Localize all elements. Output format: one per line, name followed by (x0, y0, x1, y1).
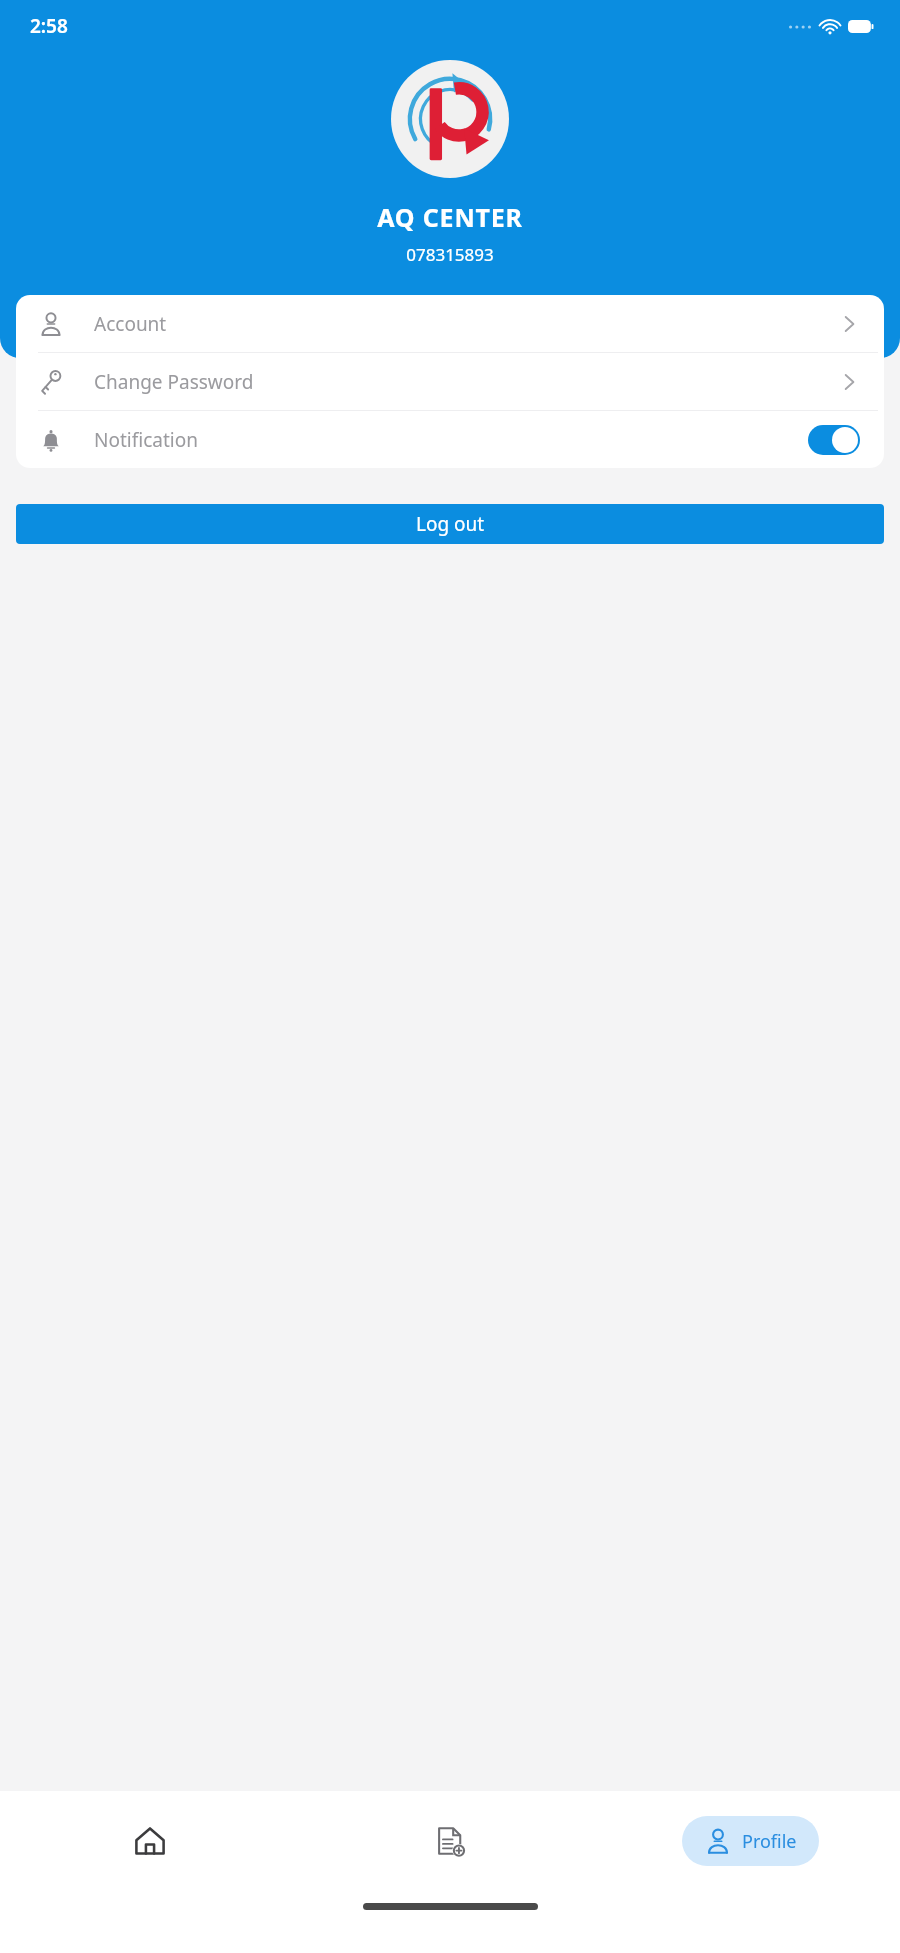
staticText: Notification (94, 427, 198, 453)
button[interactable]: Profile (682, 1816, 819, 1866)
button[interactable]: Notification (16, 411, 884, 468)
staticText: Account (94, 311, 167, 337)
button[interactable]: Change Password (16, 353, 884, 410)
staticText: Profile (742, 1829, 797, 1854)
staticText: 2:58 (30, 13, 68, 39)
staticText: 078315893 (0, 243, 900, 266)
button[interactable]: Account (16, 295, 884, 352)
staticText: Log out (416, 511, 485, 537)
button[interactable]: Notification toggle (808, 425, 860, 455)
button[interactable]: Log out (16, 504, 884, 544)
button[interactable]: Orders (425, 1816, 475, 1866)
staticText: Change Password (94, 369, 254, 395)
staticText: AQ CENTER (0, 200, 900, 234)
button[interactable]: Home (125, 1816, 175, 1866)
